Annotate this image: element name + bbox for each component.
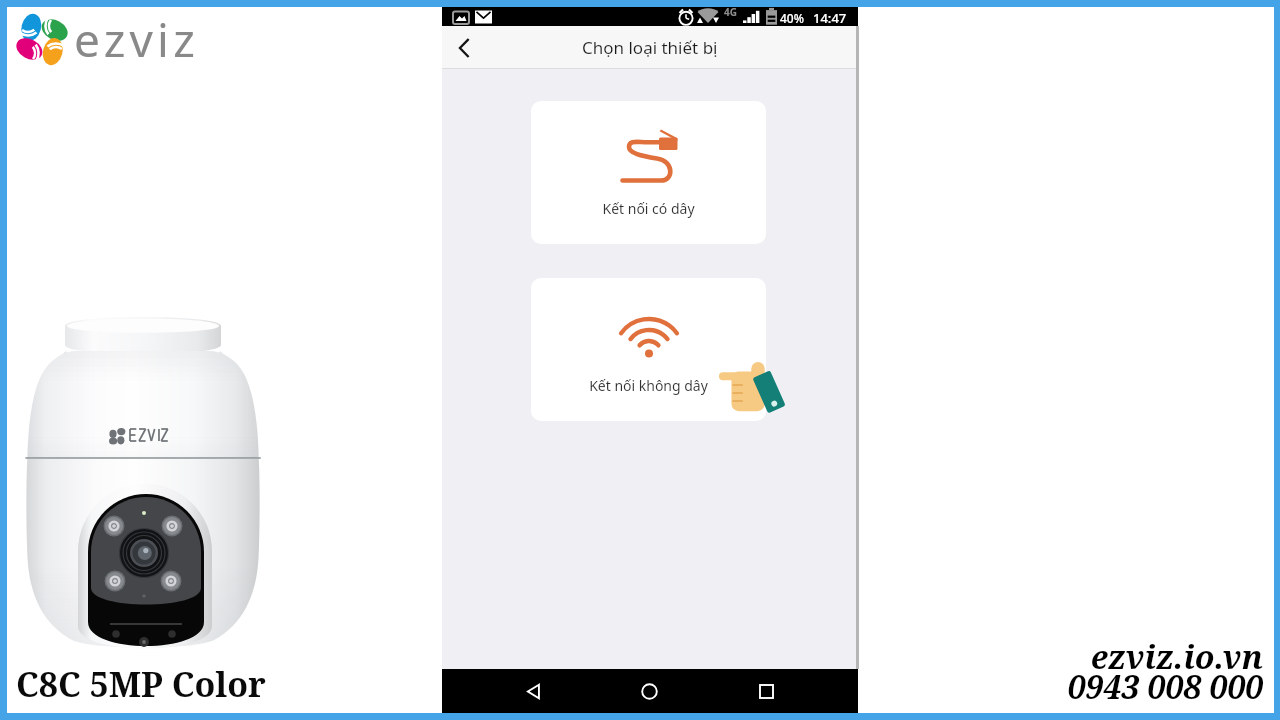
staticText: C8C 5MP Color [16, 661, 266, 707]
button[interactable]: Kết nối không dây [531, 278, 766, 421]
staticText: 40% [780, 10, 804, 26]
staticText: ezviz [74, 8, 199, 71]
staticText: Chọn loại thiết bị [582, 36, 718, 59]
button[interactable]: Kết nối có dây [531, 101, 766, 244]
staticText: Kết nối không dây [589, 376, 708, 395]
staticText: Kết nối có dây [602, 199, 695, 218]
staticText: 0943 008 000 [1067, 665, 1263, 709]
button[interactable]: Home [626, 669, 672, 714]
button[interactable]: Recent apps [743, 669, 789, 714]
staticText: 4G [724, 5, 737, 19]
staticText: ezviz.io.vn [1090, 635, 1263, 679]
button[interactable]: Back [510, 669, 556, 714]
button[interactable]: Back [442, 26, 486, 69]
staticText: 14:47 [813, 9, 847, 27]
